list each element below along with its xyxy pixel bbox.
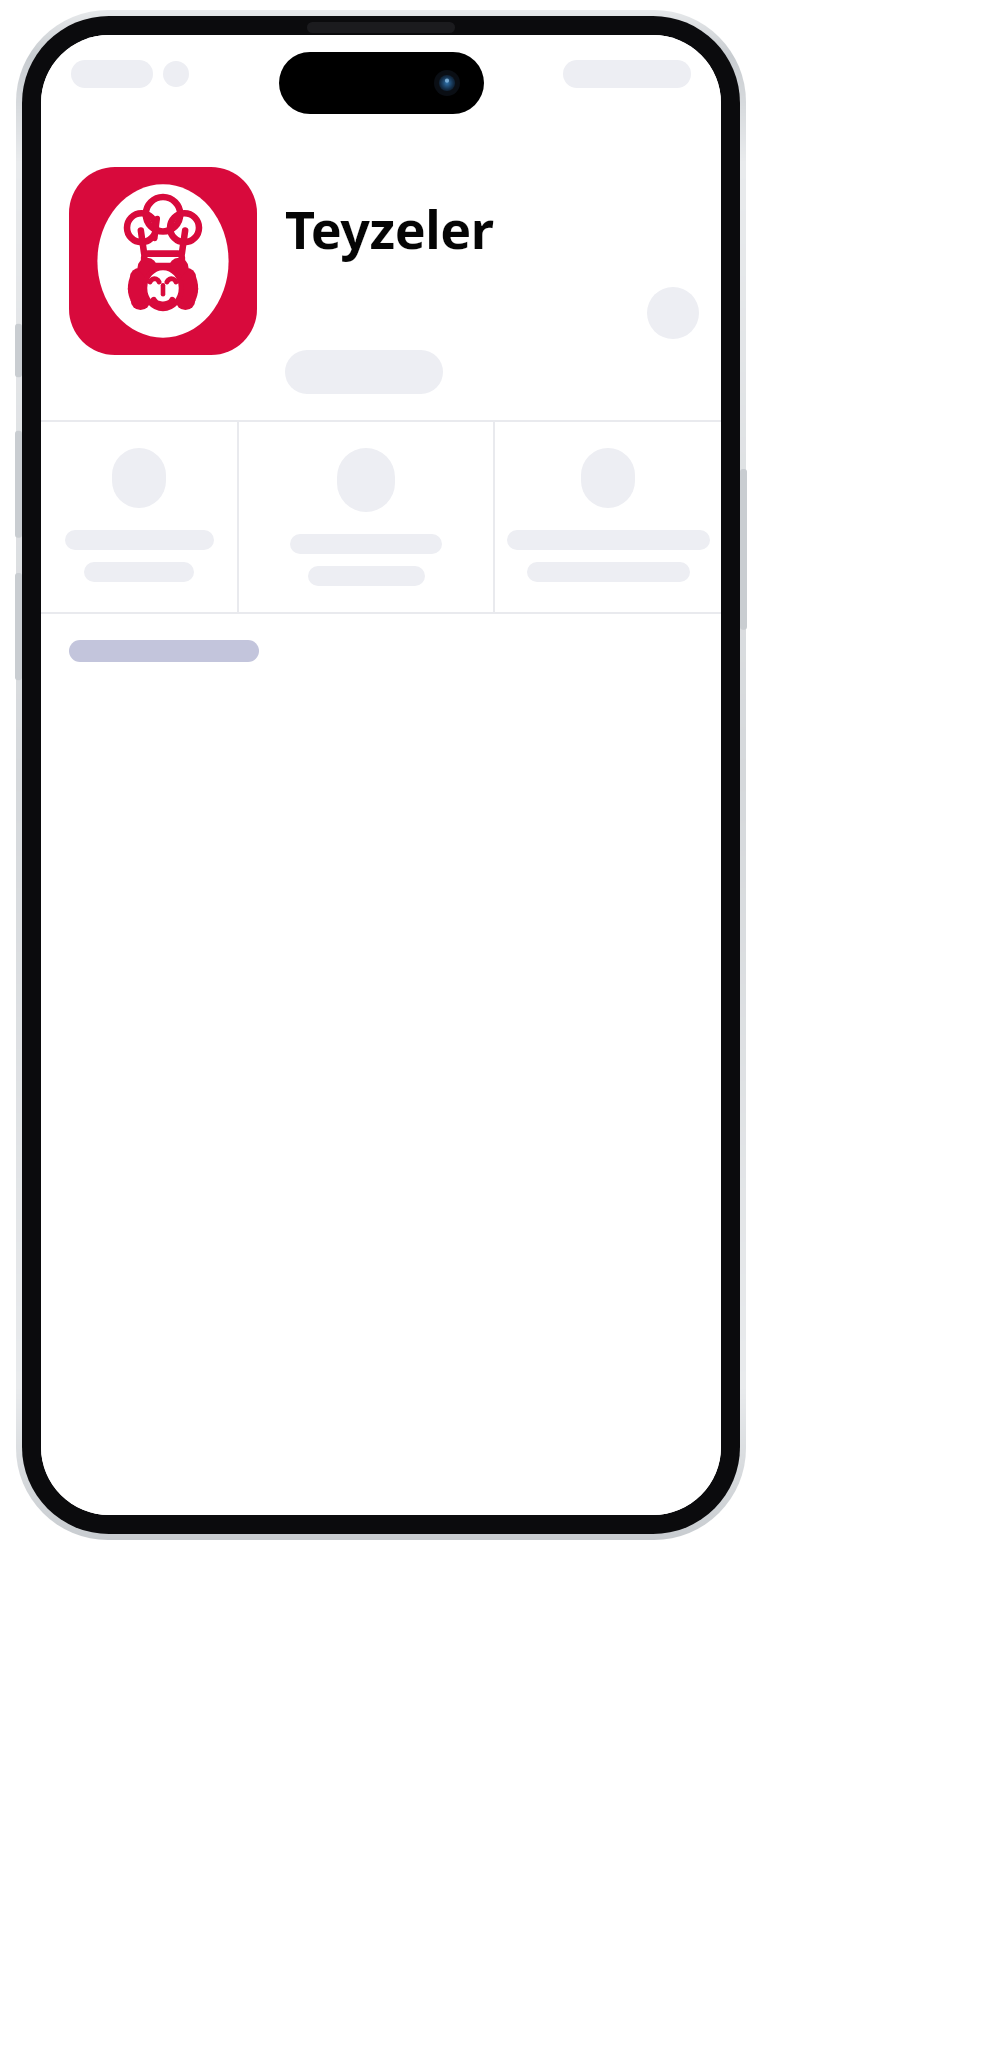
- button[interactable]: Category: [239, 422, 493, 612]
- button[interactable]: Teyzeler app icon: [69, 167, 257, 355]
- button[interactable]: Category: [41, 422, 237, 612]
- staticText: Teyzeler: [285, 193, 494, 264]
- button[interactable]: Account: [647, 287, 699, 339]
- button[interactable]: Category: [495, 422, 721, 612]
